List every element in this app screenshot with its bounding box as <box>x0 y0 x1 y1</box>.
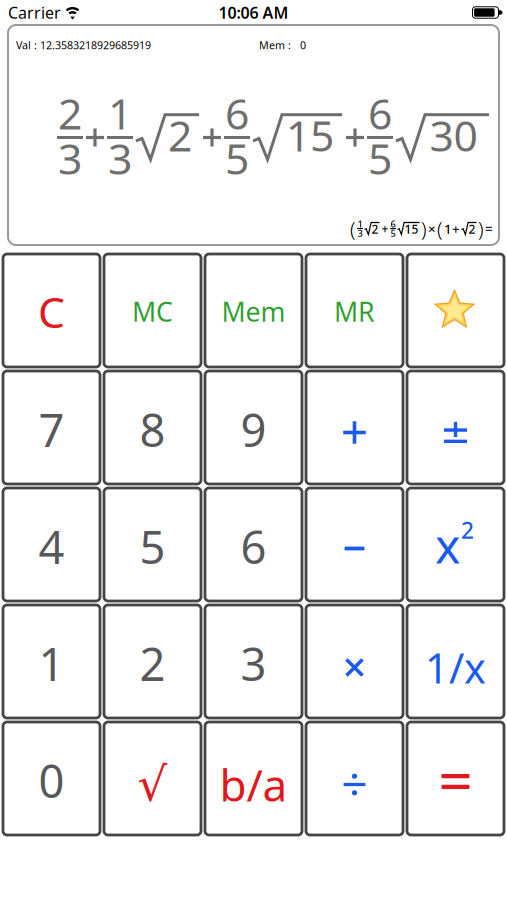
staticText: 0 <box>300 38 306 52</box>
staticText: 9 <box>240 399 266 460</box>
staticText: 6 <box>390 218 395 230</box>
button[interactable]: Multiply <box>306 605 403 718</box>
button[interactable]: Clear <box>3 254 100 367</box>
staticText: 6 <box>368 85 392 141</box>
staticText: Carrier <box>8 2 61 23</box>
button[interactable]: 5 <box>104 488 201 601</box>
staticText: 0 <box>38 750 64 811</box>
button[interactable]: 4 <box>3 488 100 601</box>
staticText: 2 <box>139 633 165 694</box>
button[interactable]: Favorites <box>407 254 504 367</box>
button[interactable]: Memory Store <box>205 254 302 367</box>
button[interactable]: Reciprocal <box>407 605 504 718</box>
button[interactable]: 1 <box>3 605 100 718</box>
staticText: ( <box>350 215 356 242</box>
staticText: 5 <box>368 130 392 186</box>
button[interactable]: 6 <box>205 488 302 601</box>
staticText: 1 <box>357 218 362 230</box>
staticText: 3 <box>357 227 362 239</box>
staticText: 1 <box>108 85 132 141</box>
staticText: 2 <box>468 221 475 237</box>
button[interactable]: Add <box>306 371 403 484</box>
staticText: MR <box>334 294 375 329</box>
button[interactable]: Subtract <box>306 488 403 601</box>
staticText: 8 <box>139 399 165 460</box>
button[interactable]: 9 <box>205 371 302 484</box>
button[interactable]: Equals <box>407 722 504 835</box>
button[interactable]: Square root <box>104 722 201 835</box>
button[interactable]: Memory Clear <box>104 254 201 367</box>
staticText: 2 <box>371 221 378 237</box>
staticText: 5 <box>390 227 395 239</box>
staticText: 1/x <box>425 640 486 695</box>
staticText: x <box>435 513 460 577</box>
staticText: 2 <box>58 85 82 141</box>
button[interactable]: Divide <box>306 722 403 835</box>
staticText: 6 <box>240 516 266 577</box>
staticText: 3 <box>108 130 132 186</box>
staticText: × <box>428 220 436 237</box>
staticText: 6 <box>225 85 249 141</box>
button[interactable]: Square <box>407 488 504 601</box>
button[interactable]: 7 <box>3 371 100 484</box>
staticText: Mem : <box>259 38 291 52</box>
staticText: ) <box>478 215 484 242</box>
staticText: 1 <box>38 633 64 694</box>
staticText: 1+ <box>444 220 460 237</box>
staticText: 3 <box>240 633 266 694</box>
staticText: ) <box>421 215 427 242</box>
staticText: 15 <box>404 221 418 237</box>
staticText: 10:06 AM <box>218 2 288 23</box>
staticText: 4 <box>38 516 64 577</box>
staticText: Mem <box>221 294 285 329</box>
staticText: 5 <box>139 516 165 577</box>
staticText: √ <box>137 758 167 811</box>
button[interactable]: 2 <box>104 605 201 718</box>
staticText: ( <box>437 215 443 242</box>
button[interactable]: 3 <box>205 605 302 718</box>
button[interactable]: Plus minus <box>407 371 504 484</box>
staticText: = <box>485 220 493 237</box>
staticText: + <box>381 220 388 236</box>
button[interactable]: 8 <box>104 371 201 484</box>
staticText: 3 <box>58 130 82 186</box>
staticText: C <box>38 283 65 340</box>
staticText: 7 <box>38 399 64 460</box>
staticText: 5 <box>225 130 249 186</box>
staticText: 15 <box>286 107 334 163</box>
staticText: b/a <box>219 755 287 814</box>
staticText: 30 <box>429 107 477 163</box>
staticText: 2 <box>461 515 474 545</box>
button[interactable]: 0 <box>3 722 100 835</box>
staticText: 2 <box>168 107 192 163</box>
staticText: Val : 12.3583218929685919 <box>16 38 151 52</box>
staticText: MC <box>132 294 173 329</box>
button[interactable]: Memory Recall <box>306 254 403 367</box>
button[interactable]: Fraction <box>205 722 302 835</box>
